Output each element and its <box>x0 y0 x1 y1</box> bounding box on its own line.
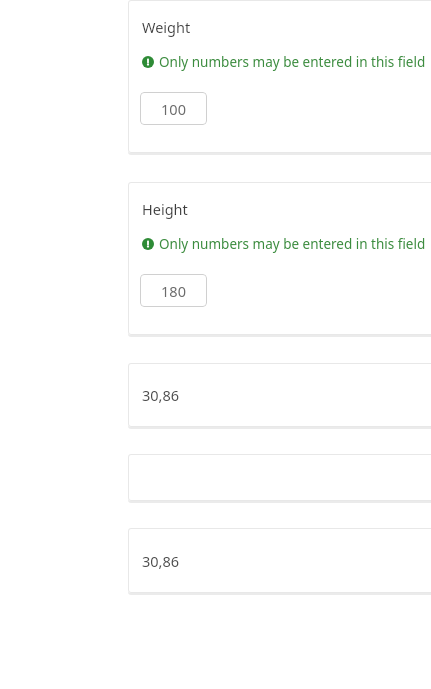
staticText: Height <box>142 199 188 219</box>
staticText: Only numbers may be entered in this fiel… <box>159 235 426 253</box>
other: Validation info <box>142 56 154 68</box>
button[interactable]: 30,86 <box>128 363 431 427</box>
staticText: 100 <box>161 99 186 119</box>
other: Validation info <box>142 238 154 250</box>
button[interactable] <box>128 454 431 501</box>
button[interactable]: 30,86 <box>128 528 431 593</box>
button[interactable]: Height <box>128 182 431 335</box>
staticText: 180 <box>161 281 186 301</box>
staticText: Only numbers may be entered in this fiel… <box>159 53 426 71</box>
button[interactable]: Number input 100 <box>140 92 207 125</box>
staticText: 30,86 <box>142 551 180 571</box>
button[interactable]: Weight <box>128 0 431 153</box>
button[interactable]: Number input 180 <box>140 274 207 307</box>
staticText: Weight <box>142 17 191 37</box>
staticText: 30,86 <box>142 385 180 405</box>
